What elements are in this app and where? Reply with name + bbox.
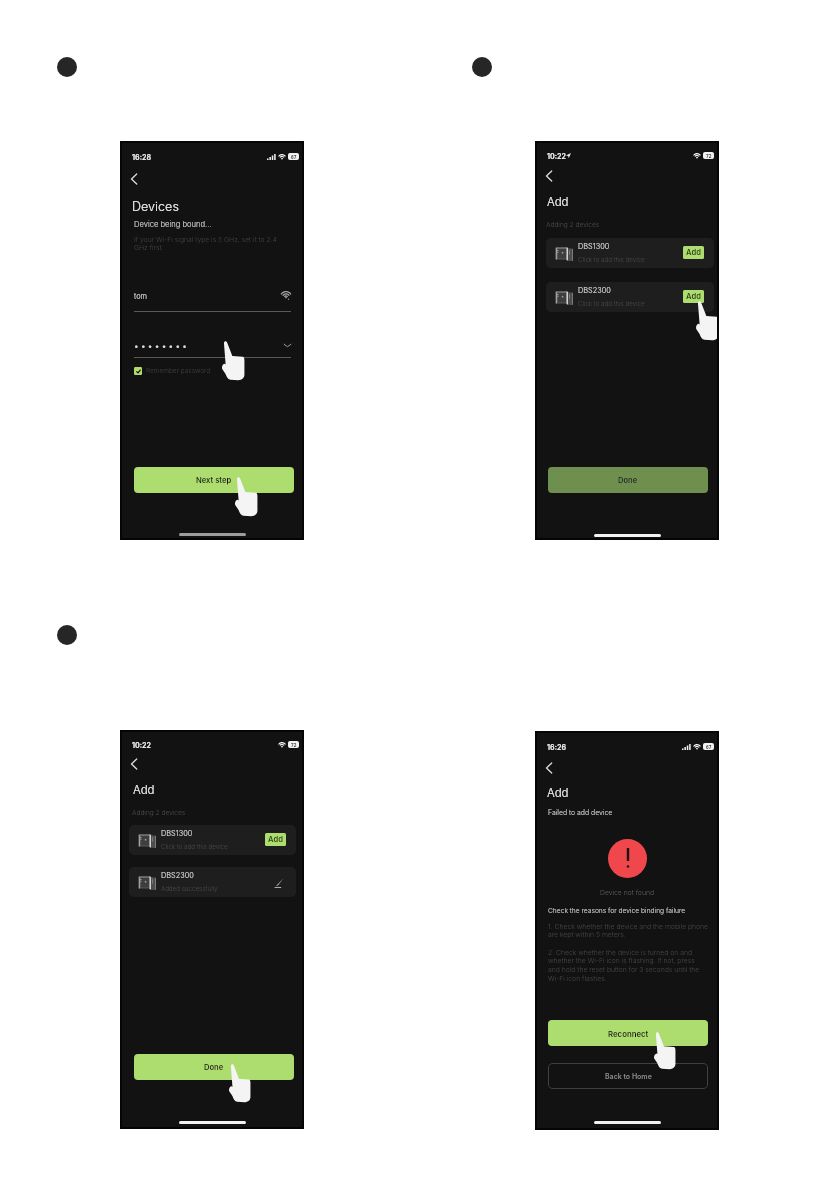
staticText: Add	[547, 786, 569, 800]
staticText: • • • • • • • •	[134, 341, 187, 351]
button[interactable]: Next step	[134, 467, 294, 493]
staticText: DBS1300	[578, 242, 610, 251]
staticText: Failed to add device	[548, 808, 613, 816]
staticText: Reconnect	[608, 1029, 649, 1038]
staticText: 16:26	[547, 743, 567, 752]
staticText: Add	[133, 783, 155, 797]
staticText: 10:22	[547, 152, 567, 161]
staticText: 67	[706, 744, 712, 750]
staticText: Add	[268, 835, 283, 844]
staticText: 67	[291, 154, 297, 160]
staticText: Back to Home	[605, 1072, 652, 1080]
staticText: Check the reasons for device binding fai…	[548, 907, 686, 915]
button[interactable]: Done	[548, 467, 708, 493]
button[interactable]: Add	[683, 246, 704, 259]
staticText: Click to add this device	[161, 843, 228, 851]
staticText: Adding 2 devices	[546, 221, 600, 229]
button[interactable]: Back to Home	[548, 1063, 708, 1089]
button[interactable]: Add	[265, 833, 286, 846]
button[interactable]: DBS2300	[546, 282, 714, 312]
staticText: Devices	[132, 199, 179, 214]
staticText: DBS2300	[578, 286, 611, 295]
staticText: Remember password	[146, 367, 211, 375]
staticText: DBS1300	[161, 829, 193, 838]
staticText: If your Wi-Fi signal type is 5 GHz, set …	[134, 235, 282, 252]
staticText: Click to add this device	[578, 300, 645, 308]
staticText: DBS2300	[161, 871, 194, 880]
staticText: 10:22	[132, 741, 152, 750]
button[interactable]: DBS1300	[129, 825, 296, 855]
staticText: tom	[134, 292, 147, 301]
staticText: Done	[204, 1063, 224, 1072]
staticText: Device being bound...	[134, 220, 212, 229]
staticText: Device not found	[600, 888, 654, 896]
button[interactable]: Add	[683, 290, 704, 303]
staticText: Next step	[196, 476, 232, 485]
staticText: 72	[291, 742, 297, 748]
button[interactable]: Done	[134, 1054, 294, 1080]
staticText: Add	[547, 195, 569, 209]
staticText: Add	[686, 292, 701, 301]
staticText: 1. Check whether the device and the mobi…	[548, 922, 712, 939]
button[interactable]: DBS2300	[129, 867, 296, 897]
staticText: 2. Check whether the device is turned on…	[548, 948, 706, 983]
button[interactable]: Back	[126, 756, 142, 772]
button[interactable]: Remember password	[134, 367, 211, 375]
staticText: Click to add this device	[578, 256, 645, 264]
button[interactable]: Edit device name	[272, 876, 285, 889]
staticText: Done	[618, 476, 638, 485]
staticText: Adding 2 devices	[132, 809, 186, 817]
staticText: Add	[686, 248, 701, 257]
button[interactable]: Back	[541, 760, 557, 776]
staticText: 72	[706, 153, 712, 159]
button[interactable]: Back	[541, 168, 557, 184]
button[interactable]: Reconnect	[548, 1020, 708, 1046]
button[interactable]: DBS1300	[546, 238, 714, 268]
button[interactable]: Back	[126, 171, 142, 187]
staticText: Added successfully	[161, 885, 218, 893]
staticText: 16:28	[132, 153, 152, 162]
